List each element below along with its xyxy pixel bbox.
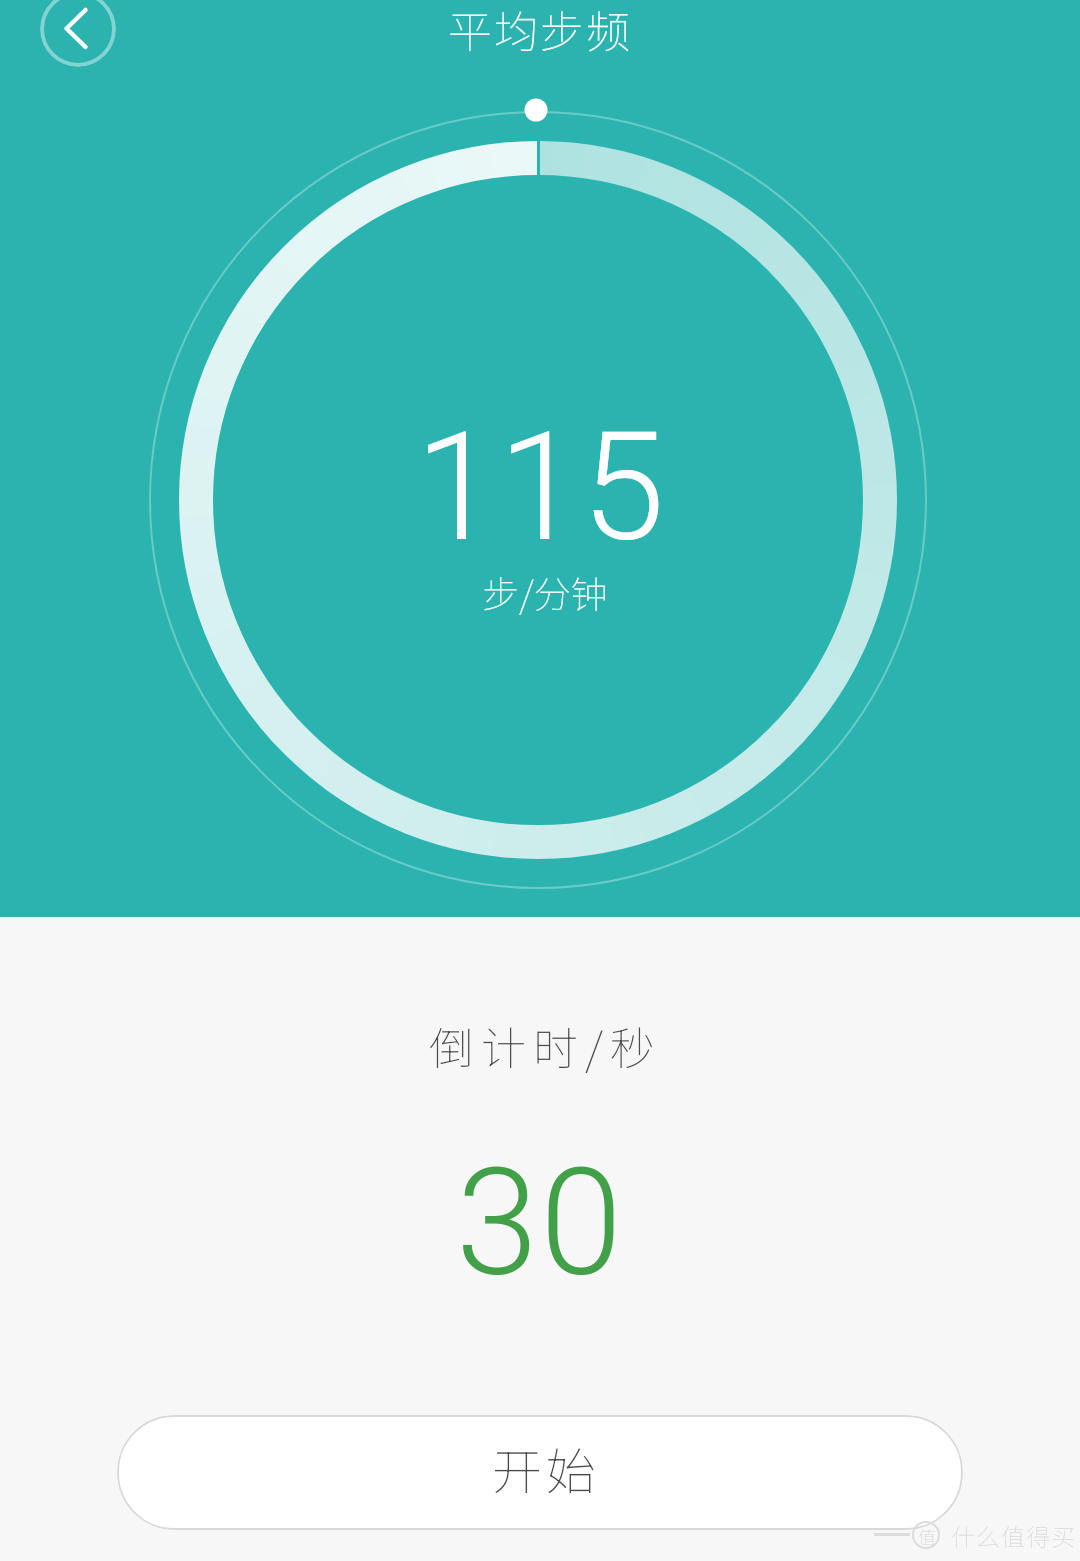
- staticText: 平均步频: [448, 0, 632, 57]
- staticText: 115: [415, 400, 665, 576]
- staticText: 值: [918, 1523, 936, 1549]
- button[interactable]: 开始: [117, 1415, 963, 1530]
- button[interactable]: [40, 0, 116, 67]
- staticText: 什么值得买: [951, 1518, 1076, 1552]
- staticText: 倒计时/秒: [429, 1013, 662, 1073]
- staticText: 开始: [492, 1432, 600, 1504]
- staticText: 步/分钟: [482, 565, 608, 619]
- staticText: 30: [456, 1137, 625, 1310]
